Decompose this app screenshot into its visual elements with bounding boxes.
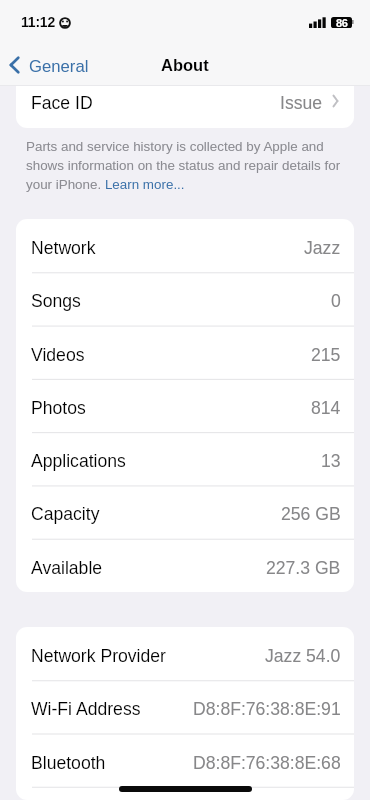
staticText: Issue: [280, 93, 323, 113]
button[interactable]: Videos: [16, 326, 354, 379]
button[interactable]: Network Provider: [16, 627, 354, 680]
staticText: About: [161, 56, 209, 74]
staticText: Wi-Fi Address: [31, 699, 141, 719]
button[interactable]: Back to General: [0, 55, 97, 77]
button[interactable]: Bluetooth: [16, 734, 354, 787]
staticText: Network: [31, 238, 96, 258]
staticText: Songs: [31, 291, 81, 311]
staticText: 227.3 GB: [266, 558, 341, 578]
staticText: Jazz 54.0: [265, 646, 341, 666]
staticText: Face ID: [31, 93, 93, 113]
button[interactable]: Photos: [16, 379, 354, 432]
staticText: 0: [331, 291, 341, 311]
button[interactable]: Face ID: [16, 86, 354, 122]
staticText: D8:8F:76:38:8E:91: [193, 699, 341, 719]
staticText: Network Provider: [31, 646, 166, 666]
staticText: Photos: [31, 398, 86, 418]
staticText: Jazz: [304, 238, 341, 258]
staticText: Parts and service history is collected b…: [26, 139, 348, 192]
staticText: D8:8F:76:38:8E:68: [193, 753, 341, 773]
button[interactable]: Capacity: [16, 485, 354, 538]
staticText: 86: [336, 17, 348, 28]
staticText: 814: [311, 398, 341, 418]
button[interactable]: Parts and service history is collected b…: [26, 139, 348, 192]
staticText: Capacity: [31, 504, 100, 524]
staticText: Bluetooth: [31, 753, 106, 773]
button[interactable]: Applications: [16, 432, 354, 485]
button[interactable]: Serial Number: [16, 787, 354, 800]
staticText: General: [29, 57, 89, 76]
staticText: Available: [31, 558, 103, 578]
staticText: 215: [311, 345, 341, 365]
staticText: 13: [321, 451, 341, 471]
button[interactable]: Songs: [16, 272, 354, 325]
button[interactable]: Network: [16, 219, 354, 272]
button[interactable]: Wi-Fi Address: [16, 680, 354, 733]
staticText: 11:12: [21, 14, 56, 30]
staticText: Applications: [31, 451, 126, 471]
staticText: 256 GB: [281, 504, 341, 524]
button[interactable]: Available: [16, 539, 354, 592]
staticText: Videos: [31, 345, 85, 365]
